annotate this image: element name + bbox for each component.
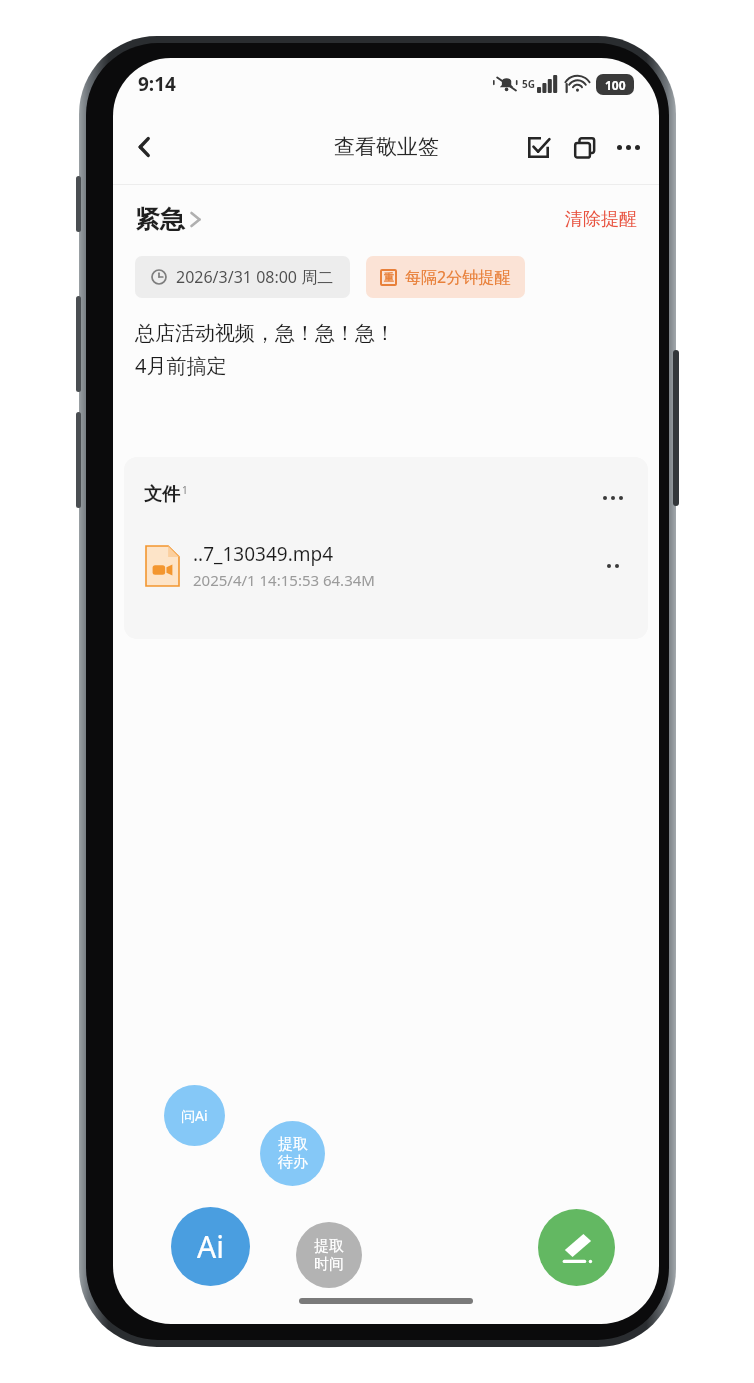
button[interactable]: File options [598, 483, 628, 513]
button[interactable]: 提取 待办 [260, 1121, 325, 1186]
button[interactable]: Ai [171, 1207, 250, 1286]
button[interactable]: Back [121, 123, 169, 171]
staticText: 2026/3/31 08:00 周二 [176, 266, 334, 288]
staticText: 总店活动视频，急！急！急！ [135, 321, 395, 346]
staticText: 100 [605, 77, 626, 93]
button[interactable]: Copy [563, 126, 605, 168]
button[interactable]: 清除提醒 [565, 208, 637, 231]
staticText: 每隔2分钟提醒 [405, 266, 511, 288]
staticText: ..7_130349.mp4 [193, 541, 334, 567]
staticText: 提取 时间 [314, 1237, 344, 1274]
button[interactable]: Item options [598, 551, 628, 581]
button[interactable]: Select [517, 126, 559, 168]
button[interactable]: ..7_130349.mp4 [124, 541, 648, 590]
staticText: 1 [182, 483, 188, 497]
button[interactable]: 问Ai [164, 1085, 225, 1146]
button[interactable]: 重 [366, 256, 525, 298]
staticText: 查看敬业签 [334, 134, 439, 160]
button[interactable]: 文件 [144, 483, 188, 506]
staticText: 2025/4/1 14:15:53 64.34M [193, 570, 375, 590]
staticText: 9:14 [138, 71, 176, 97]
button[interactable]: 2026/3/31 08:00 周二 [135, 256, 350, 298]
staticText: 提取 待办 [278, 1135, 308, 1172]
button[interactable]: 紧急 [135, 204, 201, 235]
staticText: 5G [522, 77, 535, 91]
staticText: 紧急 [135, 204, 185, 235]
button[interactable]: More options [607, 126, 649, 168]
staticText: 4月前搞定 [135, 352, 227, 379]
staticText: 问Ai [181, 1106, 208, 1125]
staticText: Ai [197, 1226, 224, 1267]
staticText: 文件 [144, 483, 180, 506]
staticText: 清除提醒 [565, 208, 637, 231]
button[interactable]: 提取 时间 [296, 1222, 362, 1288]
button[interactable]: Edit [538, 1209, 615, 1286]
staticText: 重 [384, 271, 394, 284]
